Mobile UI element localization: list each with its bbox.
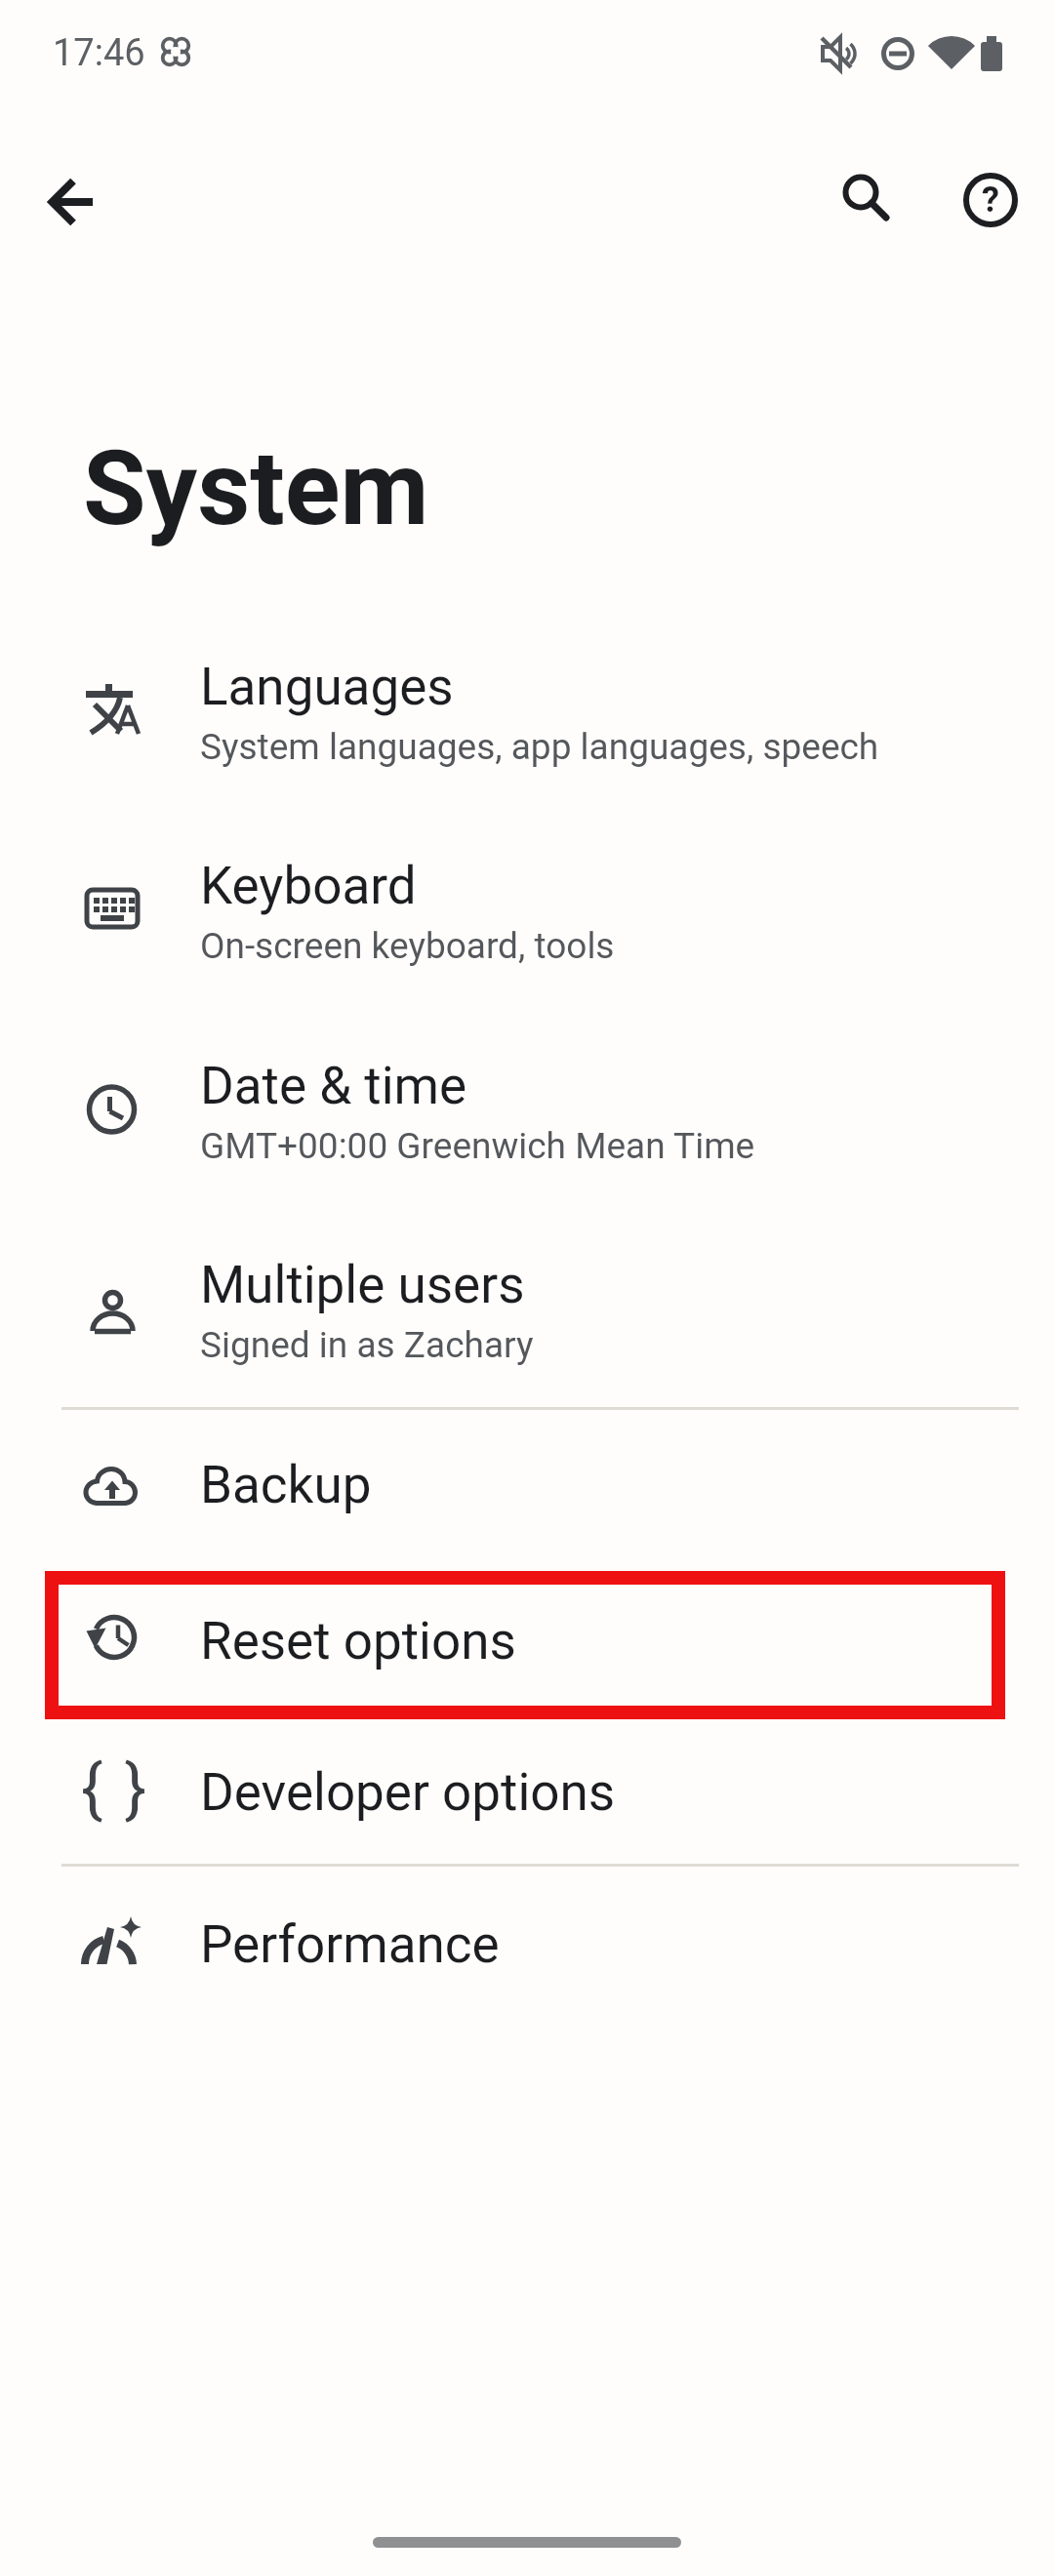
staticText: On-screen keyboard, tools [200, 925, 615, 967]
button[interactable] [0, 1410, 1054, 1558]
staticText: Date & time [200, 1056, 467, 1116]
button[interactable] [829, 160, 895, 226]
staticText: Backup [200, 1455, 372, 1515]
staticText: Keyboard [200, 856, 417, 916]
button[interactable] [0, 1717, 1054, 1866]
staticText: GMT+00:00 Greenwich Mean Time [200, 1125, 755, 1167]
button[interactable] [0, 1566, 1054, 1714]
button[interactable] [39, 169, 105, 235]
button[interactable] [0, 615, 1054, 813]
staticText: Signed in as Zachary [200, 1324, 534, 1366]
staticText: Reset options [200, 1611, 516, 1671]
button[interactable] [957, 167, 1024, 233]
staticText: { } [81, 1751, 150, 1827]
staticText: Performance [200, 1914, 500, 1975]
staticText: Languages [200, 657, 454, 717]
staticText: Developer options [200, 1762, 616, 1823]
staticText: Multiple users [200, 1255, 525, 1315]
button[interactable] [0, 1870, 1054, 2018]
staticText: System languages, app languages, speech [200, 726, 879, 768]
button[interactable] [0, 814, 1054, 1012]
button[interactable] [0, 1014, 1054, 1212]
staticText: 17:46 [53, 31, 145, 75]
button[interactable] [0, 1213, 1054, 1411]
staticText: ? [982, 180, 999, 221]
staticText: System [83, 429, 429, 549]
